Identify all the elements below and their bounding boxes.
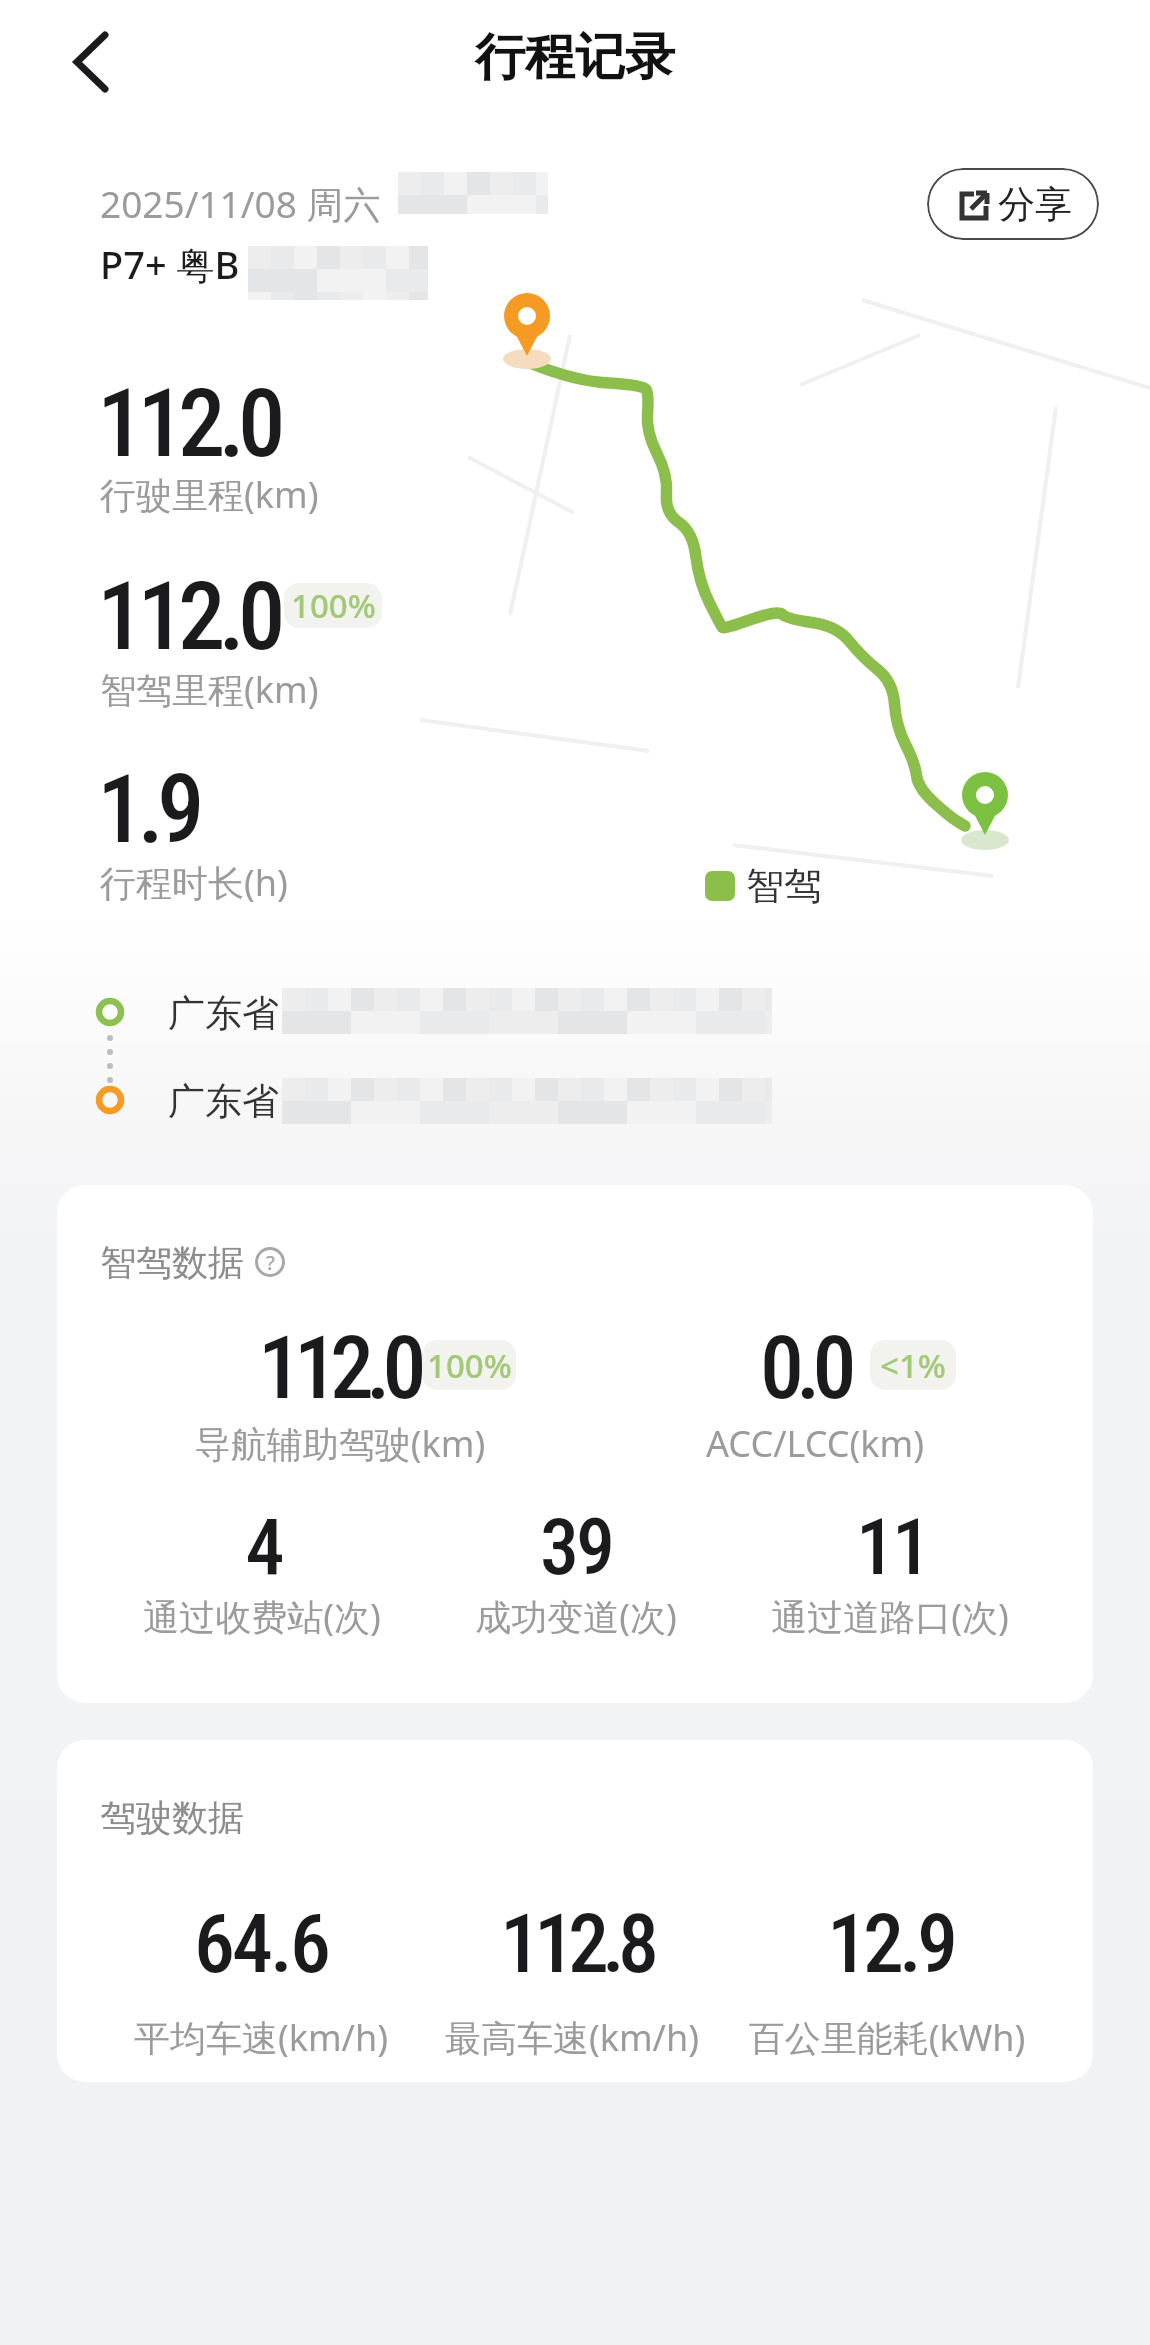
staticText: 112.0 <box>258 1316 419 1419</box>
staticText: 64.6 <box>111 1896 411 1992</box>
staticText: 行驶里程(km) <box>100 470 319 519</box>
staticText: 平均车速(km/h) <box>111 2013 411 2062</box>
staticText: 最高车速(km/h) <box>422 2013 722 2062</box>
button[interactable] <box>60 18 120 102</box>
staticText: 0.0 <box>760 1316 849 1419</box>
staticText: ACC/LCC(km) <box>665 1419 965 1468</box>
staticText: 百公里能耗(kWh) <box>737 2013 1037 2062</box>
staticText: 智驾数据 <box>100 1240 244 1285</box>
staticText: 通过道路口(次) <box>740 1592 1040 1641</box>
staticText: 驾驶数据 <box>100 1795 244 1840</box>
staticText: 智驾里程(km) <box>100 665 319 714</box>
button[interactable]: 分享 <box>927 168 1099 240</box>
staticText: 2025/11/08 周六 <box>100 178 381 229</box>
staticText: 112.0 <box>97 368 279 479</box>
staticText: 行程时长(h) <box>100 858 288 907</box>
staticText: 智驾 <box>746 862 822 910</box>
button[interactable]: ? <box>255 1247 285 1277</box>
staticText: 4 <box>115 1502 415 1593</box>
staticText: 分享 <box>998 181 1072 228</box>
staticText: 导航辅助驾驶(km) <box>190 1419 490 1468</box>
staticText: 广东省 <box>168 1078 279 1125</box>
staticText: <1% <box>880 1343 946 1388</box>
staticText: P7+ 粤B <box>100 238 240 290</box>
staticText: 100% <box>291 583 376 628</box>
staticText: 成功变道(次) <box>426 1592 726 1641</box>
staticText: 行程记录 <box>475 26 675 89</box>
staticText: ? <box>266 1249 275 1276</box>
staticText: 广东省 <box>168 990 279 1037</box>
staticText: 通过收费站(次) <box>112 1592 412 1641</box>
staticText: 39 <box>426 1502 726 1593</box>
staticText: 1.9 <box>97 754 198 865</box>
staticText: 11 <box>742 1502 1042 1593</box>
staticText: 112.8 <box>426 1896 726 1992</box>
staticText: 100% <box>427 1343 512 1388</box>
staticText: 12.9 <box>740 1896 1040 1992</box>
staticText: 112.0 <box>97 561 279 672</box>
